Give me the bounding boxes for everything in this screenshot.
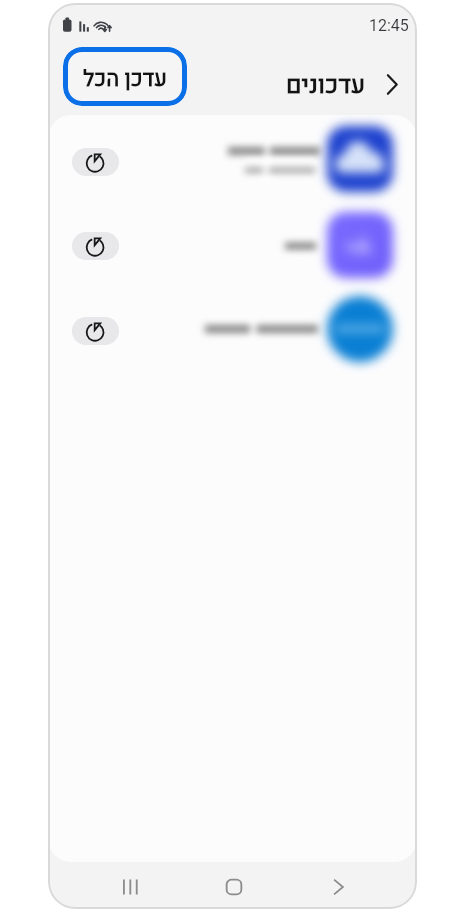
button[interactable]: Recent apps bbox=[103, 865, 159, 909]
staticText: עדכן הכל bbox=[83, 63, 167, 95]
button[interactable]: Update app bbox=[72, 232, 119, 260]
button[interactable]: Update app bbox=[72, 317, 119, 345]
staticText: עדכונים bbox=[286, 67, 366, 101]
button[interactable]: Home bbox=[206, 865, 262, 909]
staticText: 12:45 bbox=[369, 16, 409, 35]
button[interactable]: Back bbox=[310, 865, 366, 909]
button[interactable]: עדכן הכל bbox=[63, 47, 187, 106]
button[interactable]: עדכונים bbox=[286, 67, 403, 101]
button[interactable]: Update app bbox=[72, 148, 119, 176]
